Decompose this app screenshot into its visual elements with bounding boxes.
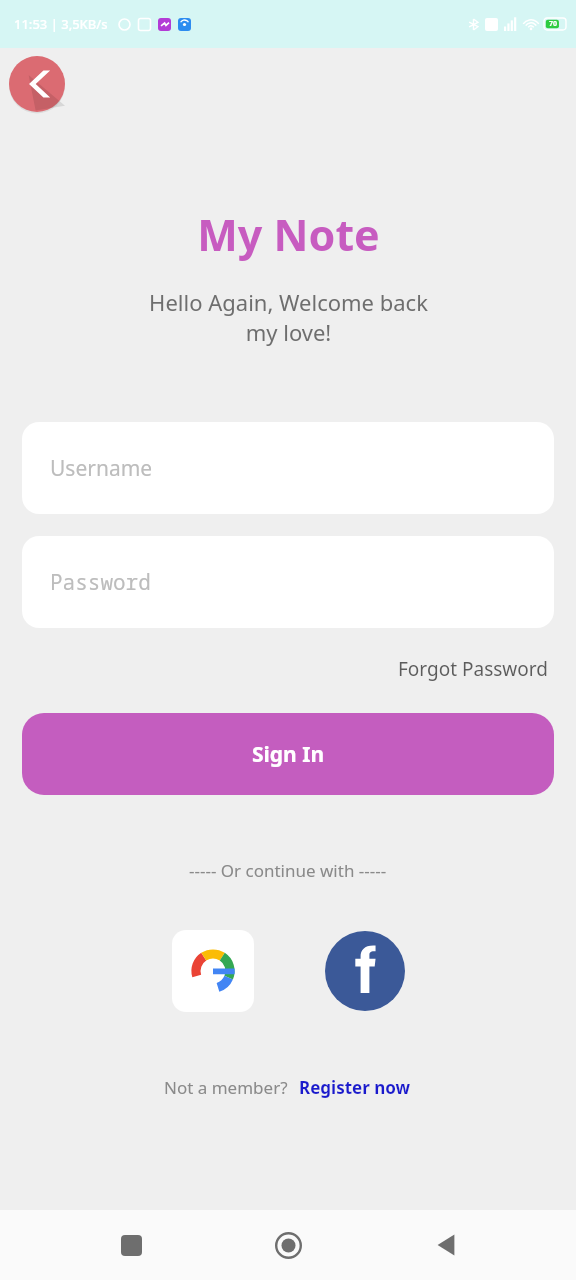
button[interactable]: Password [22,536,554,628]
button[interactable]: Sign In [22,713,554,795]
button[interactable]: Back [419,1218,473,1272]
staticText: My Note [197,205,380,264]
button[interactable]: Back [9,56,65,112]
button[interactable]: Home [261,1218,315,1272]
staticText: 11:53 | 3,5KB/s [14,15,108,33]
button[interactable]: Sign in with Google [172,930,254,1012]
staticText: Not a member? [164,1076,297,1099]
staticText: Forgot Password [398,656,548,682]
staticText: Username [50,454,153,483]
staticText: ----- Or continue with ----- [189,859,387,882]
staticText: Password [50,568,151,597]
staticText: Hello Again, Welcome back my love! [149,287,428,348]
button[interactable]: Username [22,422,554,514]
button[interactable]: Sign in with Facebook [325,931,405,1011]
staticText: Sign In [252,740,325,769]
button[interactable]: Register now [297,1074,413,1101]
staticText: 70 [549,19,558,29]
staticText: Register now [299,1076,411,1099]
button[interactable]: Recents [104,1218,158,1272]
button[interactable]: Forgot Password [394,652,552,686]
